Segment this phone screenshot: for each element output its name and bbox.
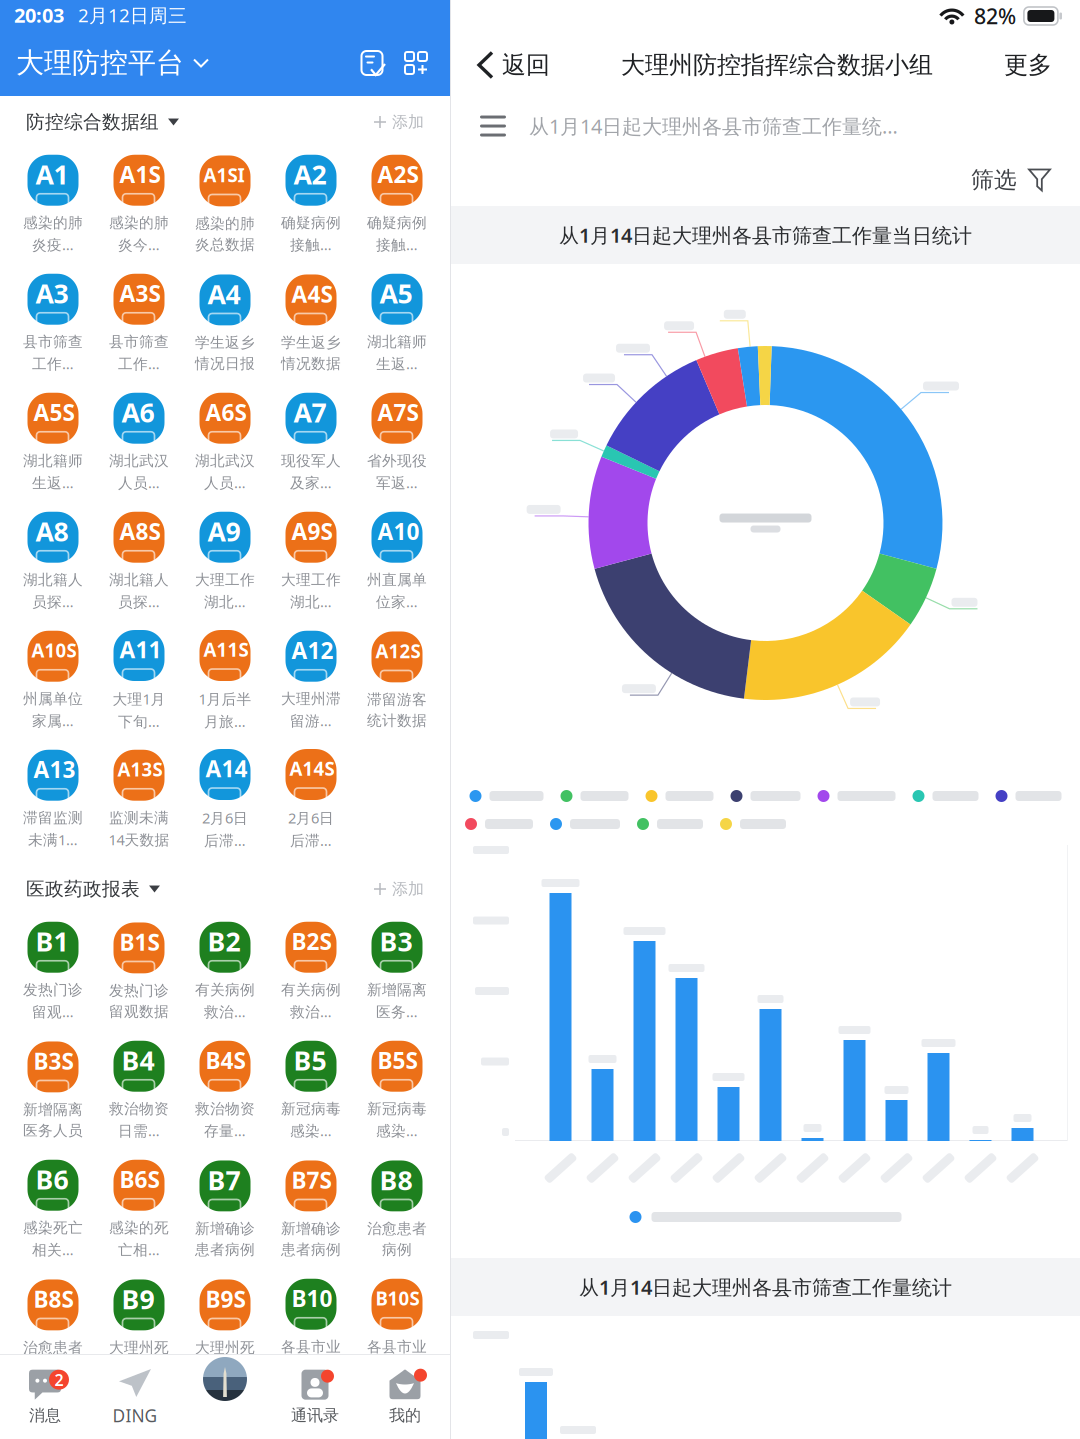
button[interactable]: B2 [182, 915, 268, 1027]
button[interactable]: A5S [10, 386, 96, 498]
staticText: 治愈患者 [23, 1338, 83, 1356]
button[interactable]: A11 [96, 624, 182, 736]
button[interactable]: A11S [182, 624, 268, 736]
staticText: 大理州死 [195, 1338, 255, 1356]
staticText: 通讯录 [291, 1406, 339, 1425]
staticText: 新增确诊 [281, 1219, 341, 1237]
button[interactable]: B8S [10, 1272, 96, 1384]
button[interactable]: A7 [268, 386, 354, 498]
button[interactable]: A10S [10, 624, 96, 736]
button[interactable]: 我的 [360, 1356, 450, 1438]
staticText: 医务人员 [23, 1121, 83, 1139]
staticText: A7S [377, 397, 418, 427]
button[interactable]: B5 [268, 1034, 354, 1146]
staticText: B2 [207, 923, 240, 959]
staticText: 留游… [290, 711, 332, 730]
button[interactable]: B6S [96, 1153, 182, 1265]
button[interactable]: A3 [10, 267, 96, 379]
button[interactable]: A13 [10, 743, 96, 855]
button[interactable]: 2 [0, 1356, 90, 1438]
staticText: 情况日报 [195, 354, 255, 372]
button[interactable]: DING [90, 1356, 180, 1438]
staticText: 新增隔离 [367, 981, 427, 999]
staticText: 亡病例 [202, 1359, 247, 1377]
button[interactable]: A4 [182, 267, 268, 379]
staticText: B6S [119, 1164, 159, 1194]
button[interactable]: B9 [96, 1272, 182, 1384]
button[interactable]: 待办 [350, 41, 394, 85]
button[interactable]: 通讯录 [270, 1356, 360, 1438]
button[interactable]: B1 [10, 915, 96, 1027]
button[interactable]: B10S [354, 1272, 440, 1384]
button[interactable]: A6 [96, 386, 182, 498]
button[interactable]: B8 [354, 1153, 440, 1265]
staticText: 县市筛查 [23, 333, 83, 351]
button[interactable]: A9S [268, 505, 354, 617]
button[interactable]: B2S [268, 915, 354, 1027]
staticText: B4S [205, 1045, 245, 1075]
button[interactable]: 更多 [990, 36, 1066, 94]
button[interactable]: A1SI [182, 148, 268, 260]
staticText: 亡病例 [116, 1359, 161, 1377]
staticText: A5 [379, 275, 412, 311]
button[interactable]: B1S [96, 915, 182, 1027]
staticText: 各县市业 [367, 1338, 427, 1356]
staticText: 后滞… [204, 830, 246, 850]
staticText: 大理州滞 [281, 690, 341, 708]
button[interactable]: B4 [96, 1034, 182, 1146]
button[interactable]: 添加 [394, 41, 438, 85]
button[interactable]: A2S [354, 148, 440, 260]
button[interactable]: B7 [182, 1153, 268, 1265]
staticText: A12 [291, 635, 333, 665]
button[interactable]: A1S [96, 148, 182, 260]
button[interactable]: 添加 [374, 875, 424, 903]
button[interactable]: 工作台 [180, 1356, 270, 1438]
button[interactable]: B9S [182, 1272, 268, 1384]
button[interactable]: 大理防控平台 [16, 38, 208, 88]
button[interactable]: A8S [96, 505, 182, 617]
button[interactable]: B7S [268, 1153, 354, 1265]
button[interactable]: B4S [182, 1034, 268, 1146]
button[interactable]: A12 [268, 624, 354, 736]
button[interactable]: B3S [10, 1034, 96, 1146]
button[interactable]: A8 [10, 505, 96, 617]
staticText: 从1月14日起大理州各县市筛查工作量统… [529, 113, 898, 139]
button[interactable]: A3S [96, 267, 182, 379]
button[interactable]: A13S [96, 743, 182, 855]
button[interactable]: 防控综合数据组 [26, 106, 179, 137]
staticText: 湖北籍师 [367, 333, 427, 351]
button[interactable]: 筛选 [965, 157, 1056, 203]
staticText: 滞留监测 [23, 809, 83, 827]
button[interactable]: A4S [268, 267, 354, 379]
button[interactable]: B6 [10, 1153, 96, 1265]
button[interactable]: A14 [182, 743, 268, 855]
staticText: A10S [31, 638, 76, 663]
button[interactable]: B10 [268, 1272, 354, 1384]
button[interactable]: A12S [354, 624, 440, 736]
button[interactable]: A7S [354, 386, 440, 498]
button[interactable]: 返回 [465, 36, 564, 94]
button[interactable]: A2 [268, 148, 354, 260]
button[interactable]: A6S [182, 386, 268, 498]
button[interactable]: 目录 [475, 109, 511, 143]
staticText: 大理州防控指挥综合数据小组 [621, 50, 933, 80]
staticText: 湖北籍师 [23, 452, 83, 470]
button[interactable]: A1 [10, 148, 96, 260]
staticText: B10 [291, 1283, 332, 1313]
button[interactable]: B3 [354, 915, 440, 1027]
button[interactable]: A5 [354, 267, 440, 379]
button[interactable]: 医政药政报表 [26, 873, 160, 904]
button[interactable]: A9 [182, 505, 268, 617]
staticText: 位家… [376, 592, 418, 611]
staticText: 大理州死 [109, 1338, 169, 1356]
staticText: 亡相… [118, 1240, 160, 1259]
staticText: A9 [207, 513, 240, 549]
button[interactable]: A10 [354, 505, 440, 617]
button[interactable]: B5S [354, 1034, 440, 1146]
button[interactable]: 添加 [374, 108, 424, 136]
staticText: 员探… [118, 592, 160, 611]
staticText: 工作… [32, 354, 74, 373]
staticText: 救治物资 [195, 1100, 255, 1118]
button[interactable]: A14S [268, 743, 354, 855]
staticText: 务培… [290, 1359, 332, 1378]
